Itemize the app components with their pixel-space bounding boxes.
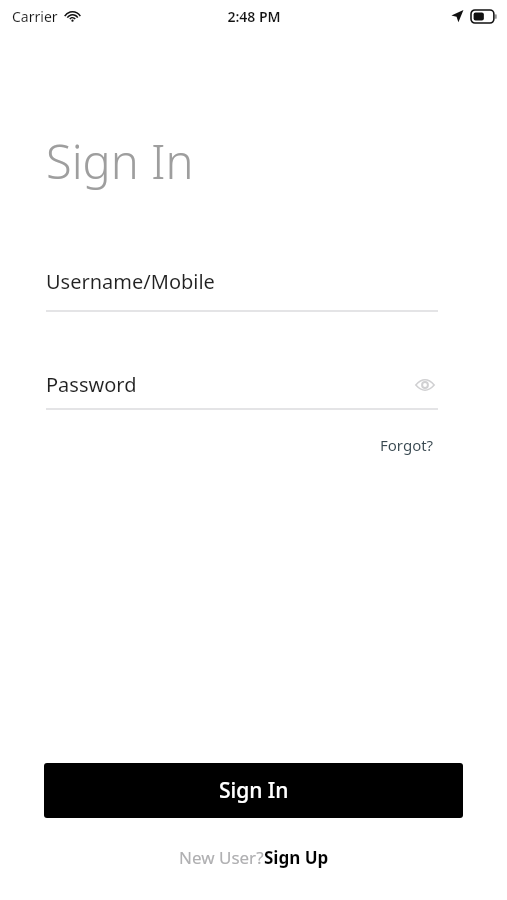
staticText: Sign In — [219, 776, 289, 805]
button[interactable]: Sign In — [44, 763, 463, 818]
staticText: Carrier — [12, 7, 58, 26]
button[interactable]: Show password — [412, 372, 438, 398]
staticText: Username/Mobile — [46, 268, 215, 295]
staticText: Forgot? — [380, 435, 434, 455]
button[interactable]: Username/Mobile — [0, 268, 507, 295]
button[interactable]: Sign Up — [264, 846, 329, 869]
button[interactable]: Forgot? — [376, 432, 438, 458]
staticText: New User? — [179, 846, 264, 869]
staticText: Sign Up — [264, 846, 329, 869]
staticText: 2:48 PM — [227, 7, 281, 26]
button[interactable]: Password — [0, 371, 507, 398]
staticText: Password — [46, 371, 137, 398]
other: Location — [450, 9, 464, 23]
staticText: Sign In — [46, 129, 194, 193]
